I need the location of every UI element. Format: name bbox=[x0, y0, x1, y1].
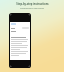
staticText: Step-by-step instructions bbox=[16, 2, 49, 6]
staticText: Follow along on your phone bbox=[20, 7, 44, 9]
